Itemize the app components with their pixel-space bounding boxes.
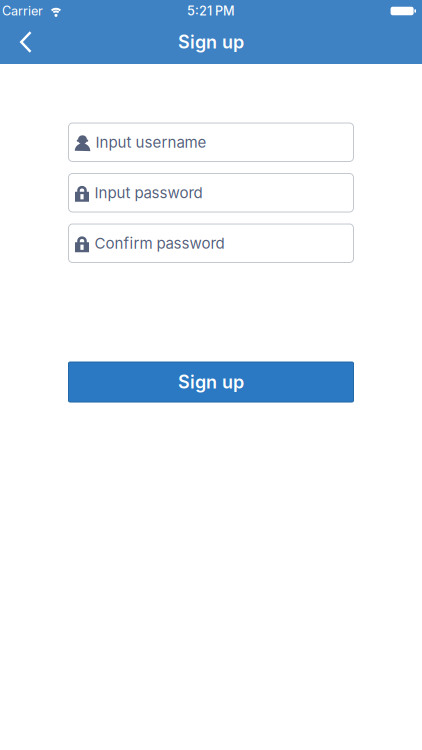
button[interactable]: Input username (68, 123, 353, 161)
button[interactable]: Sign up (68, 362, 353, 402)
staticText: Sign up (178, 371, 244, 393)
staticText: 5:21 PM (187, 3, 235, 19)
staticText: Confirm password (94, 234, 224, 252)
button[interactable]: Confirm password (68, 224, 353, 262)
button[interactable] (0, 31, 32, 53)
staticText: Input password (94, 184, 202, 202)
staticText: Sign up (178, 31, 244, 53)
staticText: Input username (95, 133, 206, 151)
button[interactable]: Input password (68, 173, 353, 212)
staticText: Carrier (2, 3, 43, 19)
